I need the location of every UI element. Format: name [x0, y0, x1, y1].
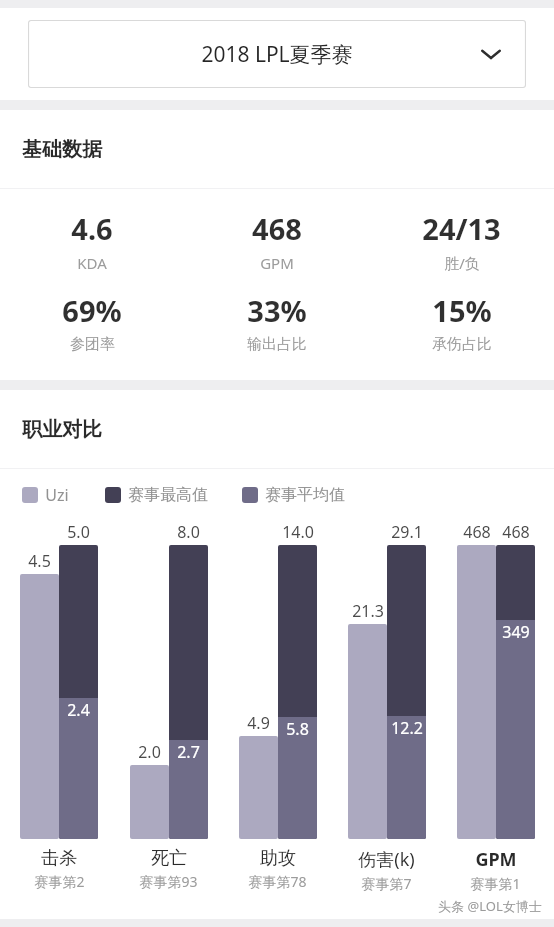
staticText: 输出占比 [247, 335, 307, 354]
staticText: 8.0 [177, 521, 200, 543]
staticText: 349 [502, 621, 530, 643]
staticText: 死亡 [151, 847, 187, 870]
staticText: GPM [475, 847, 517, 872]
other: Expand season selector [476, 39, 506, 69]
staticText: 4.6 [71, 209, 113, 248]
staticText: 承伤占比 [432, 335, 492, 354]
staticText: 4.9 [247, 712, 270, 734]
staticText: 助攻 [260, 847, 296, 870]
staticText: 21.3 [352, 600, 384, 622]
staticText: 468 [252, 209, 302, 248]
staticText: 赛事第7 [361, 874, 412, 893]
staticText: KDA [77, 253, 107, 273]
staticText: 赛事第1 [470, 874, 521, 893]
staticText: 14.0 [282, 521, 314, 543]
staticText: 赛事第78 [248, 872, 307, 891]
staticText: 2018 LPL夏季赛 [201, 40, 353, 69]
staticText: 5.8 [286, 718, 309, 740]
staticText: 头条 @LOL女博士 [438, 897, 542, 915]
staticText: 2.0 [138, 741, 161, 763]
staticText: 468 [502, 521, 530, 543]
staticText: 胜/负 [444, 253, 480, 273]
staticText: 24/13 [422, 209, 501, 248]
staticText: 4.5 [28, 550, 51, 572]
staticText: 2.7 [177, 741, 200, 763]
staticText: 12.2 [391, 717, 423, 739]
staticText: 468 [463, 521, 491, 543]
staticText: 赛事第2 [34, 872, 85, 891]
staticText: GPM [260, 253, 294, 273]
staticText: 15% [432, 291, 492, 330]
staticText: 赛事平均值 [265, 485, 345, 505]
staticText: 29.1 [391, 521, 423, 543]
button[interactable]: 2018 LPL夏季赛 [28, 20, 526, 88]
staticText: 2.4 [67, 699, 90, 721]
staticText: Uzi [45, 484, 69, 506]
staticText: 伤害(k) [358, 847, 415, 872]
staticText: 参团率 [70, 335, 115, 354]
staticText: 33% [247, 291, 307, 330]
staticText: 5.0 [67, 521, 90, 543]
staticText: 职业对比 [22, 417, 102, 442]
staticText: 赛事最高值 [128, 485, 208, 505]
staticText: 赛事第93 [139, 872, 198, 891]
staticText: 击杀 [41, 847, 77, 870]
staticText: 69% [62, 291, 122, 330]
staticText: 基础数据 [22, 137, 102, 162]
